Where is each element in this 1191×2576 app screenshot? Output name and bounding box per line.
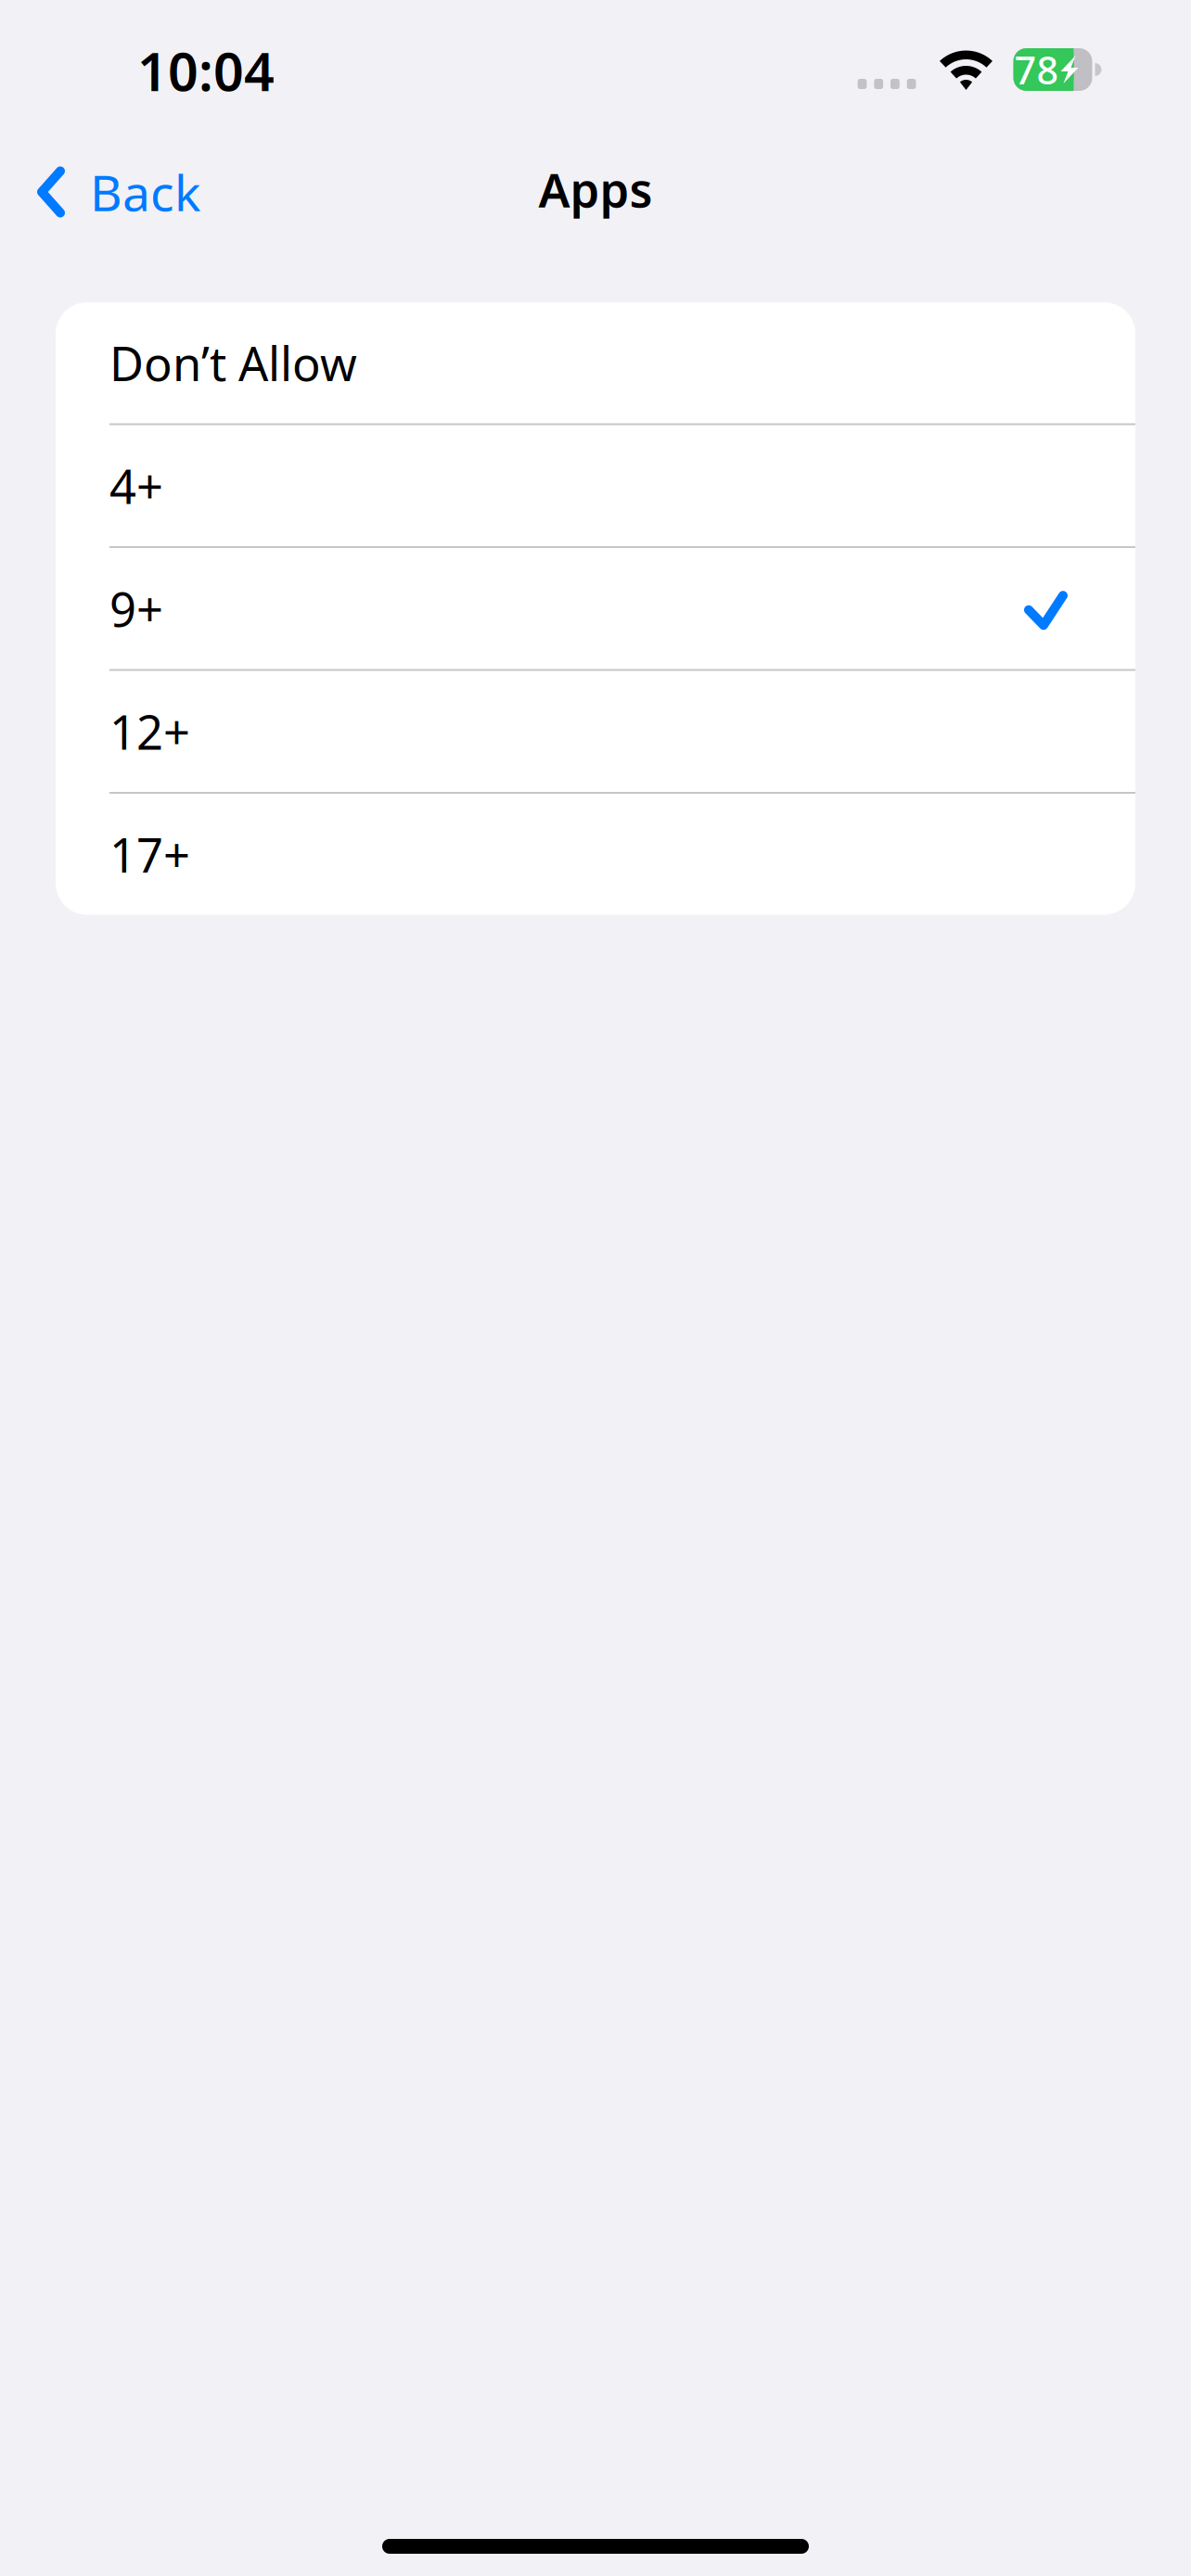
staticText: 9+ xyxy=(109,577,163,640)
button[interactable]: 4+ xyxy=(56,425,1135,546)
button[interactable]: Back xyxy=(0,141,224,243)
staticText: 78 xyxy=(1014,44,1059,95)
staticText: Don’t Allow xyxy=(109,332,357,394)
staticText: 12+ xyxy=(109,700,190,763)
staticText: 10:04 xyxy=(137,35,275,106)
button[interactable]: 17+ xyxy=(56,794,1135,915)
button[interactable]: 9+ xyxy=(56,548,1135,669)
staticText: Back xyxy=(90,159,200,225)
staticText: 17+ xyxy=(109,823,190,885)
staticText: Apps xyxy=(538,158,653,220)
button[interactable]: Don’t Allow xyxy=(56,302,1135,423)
button[interactable]: 12+ xyxy=(56,671,1135,792)
staticText: 4+ xyxy=(109,454,163,517)
